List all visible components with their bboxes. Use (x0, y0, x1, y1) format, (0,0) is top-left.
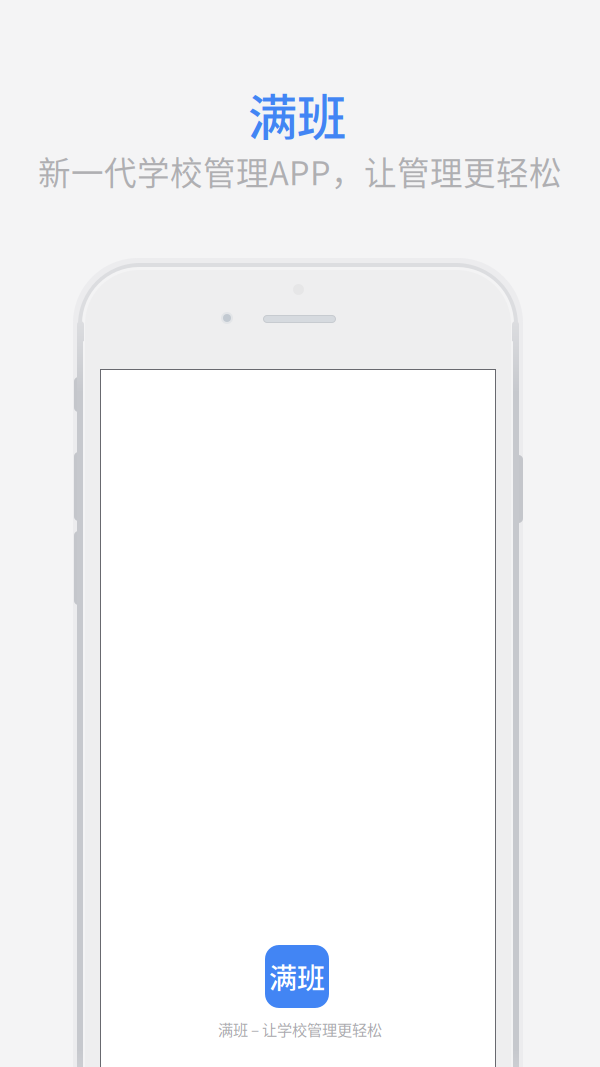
staticText: 满班 (269, 956, 325, 997)
button[interactable]: 满班 app icon (265, 945, 329, 1008)
staticText: 满班 (248, 78, 346, 150)
staticText: 新一代学校管理APP，让管理更轻松 (38, 147, 562, 194)
staticText: 满班 – 让学校管理更轻松 (218, 1018, 382, 1040)
